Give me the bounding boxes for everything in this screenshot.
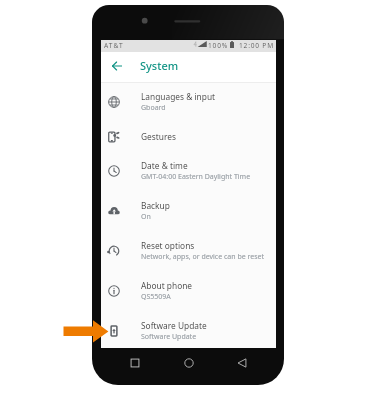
button[interactable]: Date & time (101, 151, 276, 191)
staticText: Software Update (141, 332, 197, 342)
staticText: Gboard (141, 103, 166, 113)
staticText: About phone (141, 280, 193, 291)
button[interactable]: Reset options (101, 231, 276, 271)
staticText: Languages & input (141, 91, 216, 102)
staticText: Software Update (141, 320, 207, 331)
staticText: Gestures (141, 131, 176, 142)
staticText: Network, apps, or device can be reset (141, 252, 265, 262)
staticText: Backup (141, 200, 170, 211)
button[interactable]: Languages & input (101, 82, 276, 122)
button[interactable]: Gestures (101, 122, 276, 151)
button[interactable]: About phone (101, 271, 276, 311)
button[interactable]: Backup (101, 191, 276, 231)
staticText: System (140, 58, 179, 73)
staticText: 12:00 PM (239, 41, 274, 50)
button[interactable]: Software Update (101, 311, 276, 351)
button[interactable]: Back (109, 58, 124, 73)
staticText: On (141, 212, 151, 222)
staticText: Reset options (141, 240, 195, 251)
staticText: QS5509A (141, 292, 171, 302)
staticText: AT&T (104, 41, 124, 50)
staticText: GMT-04:00 Eastern Daylight Time (141, 172, 251, 182)
button[interactable]: Back (235, 356, 249, 370)
button[interactable]: Home (182, 356, 196, 370)
staticText: 100% (208, 41, 228, 50)
button[interactable]: Recents (128, 356, 142, 370)
staticText: Date & time (141, 160, 188, 171)
